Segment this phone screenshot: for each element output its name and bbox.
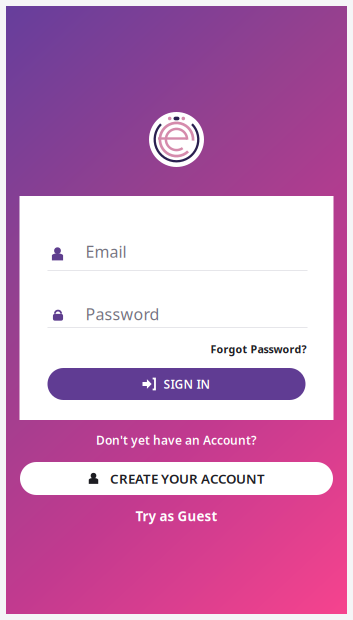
button[interactable]: CREATE YOUR ACCOUNT (20, 462, 333, 495)
staticText: CREATE YOUR ACCOUNT (110, 470, 265, 487)
button[interactable]: Forgot Password? (186, 341, 306, 357)
staticText: Don't yet have an Account? (96, 432, 257, 448)
button[interactable]: Try as Guest (106, 505, 246, 527)
button[interactable]: SIGN IN (47, 368, 305, 400)
staticText: SIGN IN (163, 376, 210, 392)
staticText: Forgot Password? (210, 342, 306, 356)
staticText: Email (85, 241, 126, 262)
staticText: Password (85, 303, 159, 325)
staticText: Try as Guest (135, 507, 217, 525)
